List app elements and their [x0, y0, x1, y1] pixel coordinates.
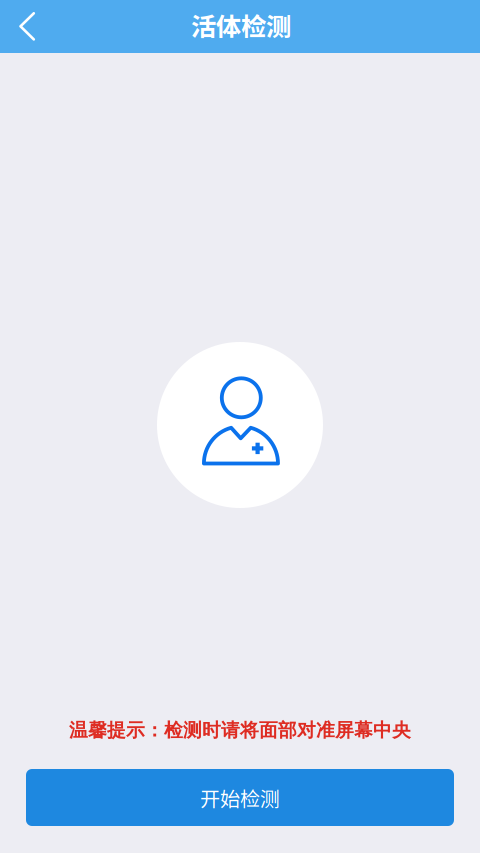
button[interactable]: 返回: [0, 0, 52, 53]
staticText: 温馨提示：检测时请将面部对准屏幕中央: [69, 718, 411, 742]
staticText: 开始检测: [200, 783, 280, 812]
staticText: 活体检测: [191, 7, 291, 43]
button[interactable]: 开始检测: [26, 769, 454, 826]
